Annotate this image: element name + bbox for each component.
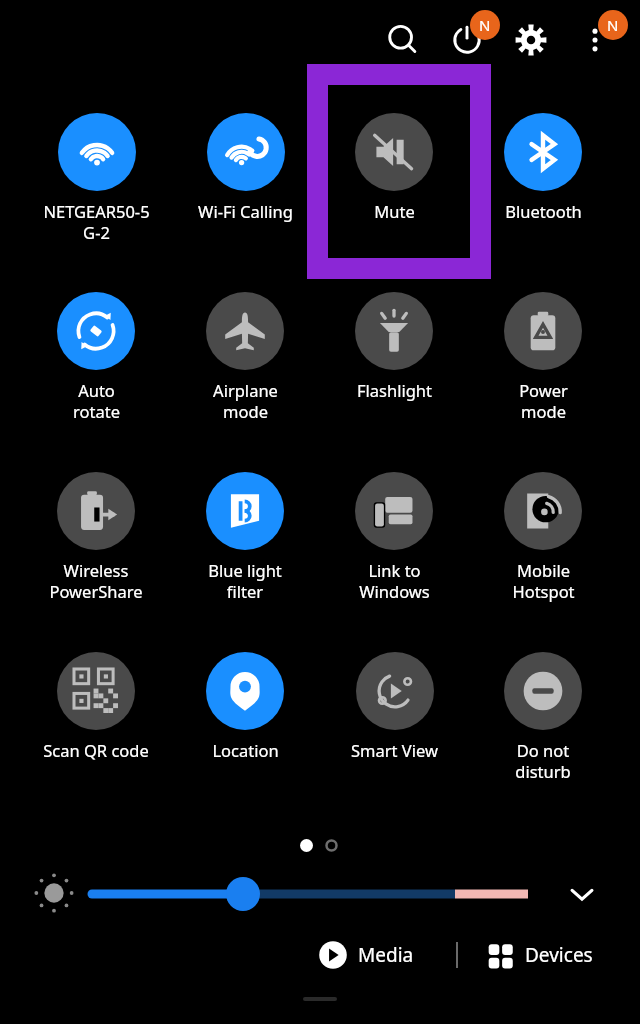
button[interactable]: More options (567, 12, 623, 68)
button[interactable]: Settings (503, 12, 559, 68)
button[interactable]: Blue light filter (173, 472, 317, 602)
button[interactable]: Brightness (86, 872, 536, 916)
staticText: Power mode (519, 379, 568, 422)
button[interactable]: Do not disturb (471, 652, 615, 782)
staticText: Flashlight (357, 379, 432, 401)
button[interactable]: Search (375, 12, 431, 68)
button[interactable]: Devices (487, 930, 593, 980)
button[interactable]: Expand (560, 872, 604, 916)
button[interactable]: Flashlight (322, 292, 466, 422)
staticText: Auto rotate (73, 379, 120, 422)
staticText: Airplane mode (213, 379, 278, 422)
staticText: NETGEAR50-5 G-2 (43, 200, 150, 243)
staticText: Devices (525, 942, 593, 968)
staticText: Scan QR code (43, 739, 149, 761)
button[interactable]: Mobile Hotspot (471, 472, 615, 602)
staticText: Media (358, 942, 414, 968)
button[interactable]: Power off (439, 12, 495, 68)
button[interactable]: Scan QR code (24, 652, 168, 782)
button[interactable]: Airplane mode (173, 292, 317, 422)
button[interactable]: Mute (322, 113, 466, 243)
button[interactable]: Power mode (471, 292, 615, 422)
staticText: Wireless PowerShare (49, 559, 143, 602)
staticText: Mute (374, 200, 415, 222)
staticText: N (479, 15, 491, 35)
button[interactable]: Link to Windows (322, 472, 466, 602)
button[interactable]: Bluetooth (471, 113, 615, 243)
staticText: Blue light filter (208, 559, 282, 602)
button[interactable]: NETGEAR50-5 G-2 (24, 113, 168, 243)
button[interactable]: Auto rotate (24, 292, 168, 422)
staticText: Mobile Hotspot (512, 559, 575, 602)
button[interactable]: Smart View (322, 652, 466, 782)
button[interactable]: Wireless PowerShare (24, 472, 168, 602)
button[interactable]: Media (318, 930, 414, 980)
staticText: Link to Windows (359, 559, 430, 602)
staticText: Location (212, 739, 279, 761)
button[interactable]: Wi-Fi Calling (173, 113, 317, 243)
staticText: Smart View (351, 739, 438, 761)
staticText: Wi-Fi Calling (198, 200, 293, 222)
staticText: Do not disturb (515, 739, 571, 782)
staticText: Bluetooth (505, 200, 582, 222)
button[interactable]: Location (173, 652, 317, 782)
staticText: N (607, 15, 619, 35)
